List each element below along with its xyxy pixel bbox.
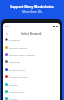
staticText: Fantom [9, 83, 18, 86]
staticText: Polygon Matic Network [9, 53, 36, 56]
button[interactable]: Arbitrum One [3, 88, 60, 95]
staticText: Optimism [9, 60, 21, 63]
button[interactable]: Avalanche Chain [3, 73, 60, 80]
button[interactable]: Fantom [3, 81, 60, 88]
button[interactable]: Binance Smart [3, 66, 60, 73]
staticText: Bitcoin Network [9, 46, 27, 49]
button[interactable]: Back [5, 32, 9, 36]
staticText: More than 20+ [22, 10, 43, 14]
button[interactable]: Ethereum [3, 36, 60, 43]
staticText: Arbitrum One [9, 90, 25, 93]
button[interactable]: Optimism [3, 58, 60, 65]
staticText: Select Network [21, 32, 42, 36]
button[interactable]: Cronos [3, 95, 60, 100]
staticText: Support Many Blockchains [10, 4, 54, 8]
staticText: Ethereum [9, 38, 21, 41]
staticText: Avalanche Chain [9, 75, 28, 78]
button[interactable]: Polygon Matic Network [3, 51, 60, 58]
button[interactable]: Bitcoin Network [3, 44, 60, 51]
staticText: Cronos [9, 97, 17, 100]
staticText: Binance Smart [9, 68, 26, 71]
staticText: 9:41 [5, 25, 10, 28]
